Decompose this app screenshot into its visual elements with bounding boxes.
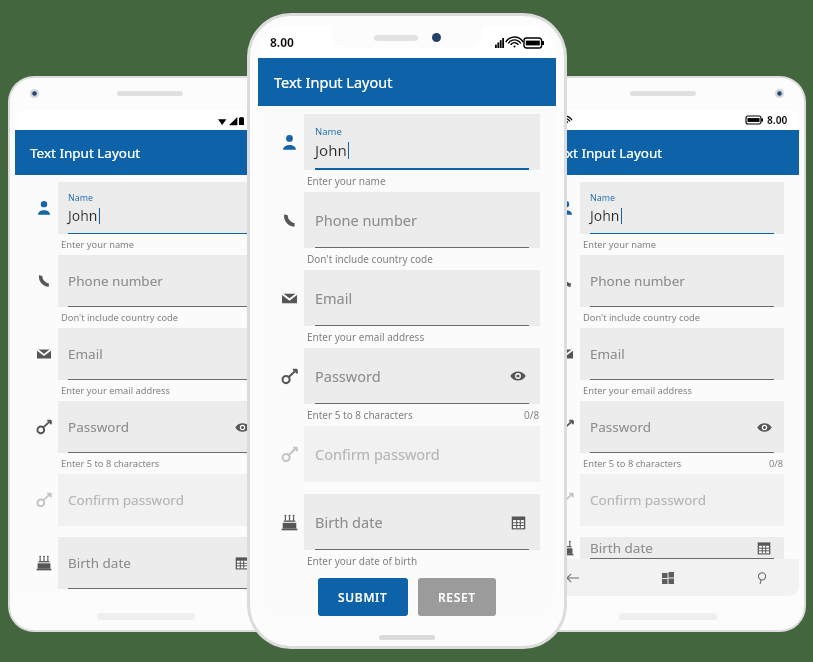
staticText: Birth date xyxy=(315,512,383,532)
staticText: Phone number xyxy=(68,272,163,290)
staticText: 0/8 xyxy=(524,408,540,422)
staticText: Password xyxy=(590,418,651,436)
staticText: Confirm password xyxy=(315,444,440,464)
staticText: Enter your email address xyxy=(307,330,425,344)
staticText: Enter your email address xyxy=(61,384,170,397)
staticText: 8.00 xyxy=(247,114,266,127)
staticText: Confirm password xyxy=(590,491,706,509)
button[interactable]: Email xyxy=(580,328,784,380)
button[interactable]: Pick date xyxy=(507,511,529,533)
staticText: Enter your name xyxy=(583,238,657,251)
button[interactable]: Name xyxy=(58,182,262,234)
staticText: Text Input Layout xyxy=(30,144,141,162)
button[interactable]: Phone number xyxy=(304,192,540,248)
staticText: Enter 5 to 8 characters xyxy=(61,457,160,470)
button[interactable]: Back xyxy=(561,566,585,590)
staticText: 8.00 xyxy=(270,34,294,50)
button[interactable]: Password xyxy=(58,401,262,453)
staticText: Confirm password xyxy=(68,491,184,509)
button[interactable]: Birth date xyxy=(304,494,540,550)
staticText: Don't include country code xyxy=(583,311,701,324)
staticText: Birth date xyxy=(68,554,131,572)
button[interactable]: Confirm password xyxy=(304,426,540,482)
button[interactable]: Name xyxy=(580,182,784,234)
staticText: Enter 5 to 8 characters xyxy=(307,408,413,422)
button[interactable]: RESET xyxy=(418,578,496,616)
button[interactable]: Confirm password xyxy=(58,474,262,526)
button[interactable]: SUBMIT xyxy=(318,578,408,616)
button[interactable]: Phone number xyxy=(58,255,262,307)
staticText: John xyxy=(68,206,98,225)
staticText: Enter your date of birth xyxy=(307,554,418,568)
staticText: SUBMIT xyxy=(338,589,388,605)
staticText: 0/8 xyxy=(247,457,262,470)
button[interactable]: Show password xyxy=(754,417,774,437)
staticText: Birth date xyxy=(590,539,653,557)
staticText: Email xyxy=(68,345,103,363)
staticText: Phone number xyxy=(315,210,417,230)
staticText: Text Input Layout xyxy=(552,144,663,162)
staticText: Enter your name xyxy=(61,238,135,251)
staticText: Email xyxy=(315,288,353,308)
staticText: RESET xyxy=(438,589,476,605)
staticText: Name xyxy=(315,125,342,138)
button[interactable]: Name xyxy=(304,114,540,170)
button[interactable]: Confirm password xyxy=(580,474,784,526)
staticText: John xyxy=(315,140,347,160)
staticText: 0/8 xyxy=(769,457,784,470)
button[interactable]: Home xyxy=(656,566,680,590)
staticText: Don't include country code xyxy=(61,311,179,324)
staticText: Password xyxy=(68,418,129,436)
button[interactable]: Pick date xyxy=(754,538,774,558)
button[interactable]: Phone number xyxy=(580,255,784,307)
button[interactable]: Email xyxy=(58,328,262,380)
button[interactable]: Pick date xyxy=(232,553,252,573)
staticText: 8.00 xyxy=(767,113,788,127)
staticText: Enter 5 to 8 characters xyxy=(583,457,682,470)
staticText: Email xyxy=(590,345,625,363)
button[interactable]: Birth date xyxy=(580,537,784,559)
staticText: Name xyxy=(68,192,93,204)
button[interactable]: Show password xyxy=(507,365,529,387)
button[interactable]: Password xyxy=(580,401,784,453)
staticText: Phone number xyxy=(590,272,685,290)
button[interactable]: Show password xyxy=(232,417,252,437)
button[interactable]: Search xyxy=(751,566,775,590)
staticText: Name xyxy=(590,192,615,204)
staticText: Enter your name xyxy=(307,174,386,188)
button[interactable]: Password xyxy=(304,348,540,404)
button[interactable]: Email xyxy=(304,270,540,326)
staticText: Password xyxy=(315,366,381,386)
staticText: Enter your email address xyxy=(583,384,692,397)
staticText: Text Input Layout xyxy=(274,72,393,92)
button[interactable]: Birth date xyxy=(58,537,262,589)
staticText: Don't include country code xyxy=(307,252,433,266)
staticText: John xyxy=(590,206,620,225)
